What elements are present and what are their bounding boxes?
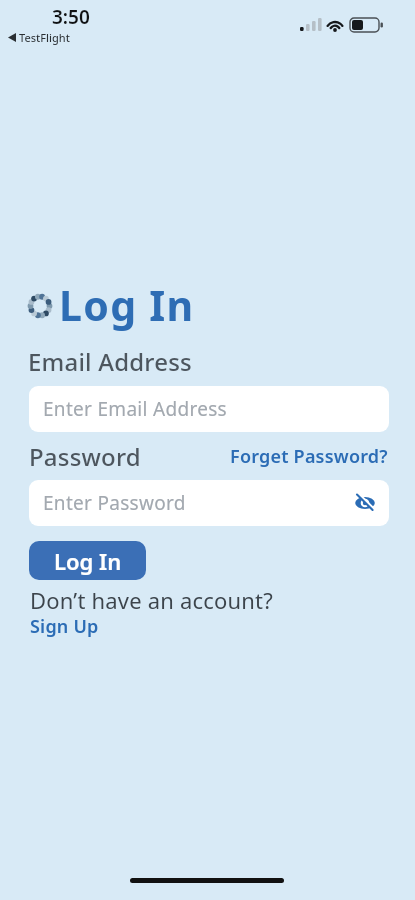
button[interactable]: Log In [29,541,146,580]
staticText: 3:50 [52,4,90,30]
staticText: Log In [54,546,122,576]
staticText: Password [29,440,141,473]
button[interactable]: Enter Password [29,480,389,526]
staticText: Enter Password [43,490,186,516]
staticText: Don’t have an account? [30,585,274,615]
staticText: Log In [59,277,195,333]
staticText: TestFlight [19,30,70,45]
button[interactable]: Forget Password? [230,444,388,469]
button[interactable] [354,492,376,514]
staticText: Email Address [28,345,192,378]
staticText: Enter Email Address [43,396,227,422]
button[interactable]: Enter Email Address [29,386,389,432]
button[interactable]: Sign Up [30,614,99,639]
